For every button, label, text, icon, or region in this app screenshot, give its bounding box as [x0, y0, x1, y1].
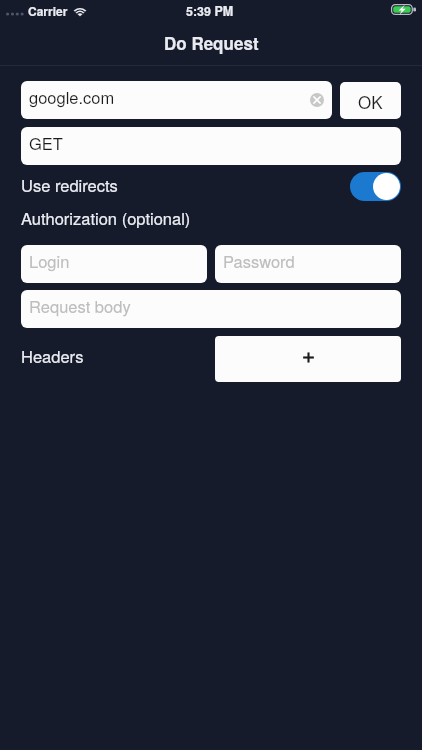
- staticText: 5:39 PM: [186, 2, 234, 20]
- button[interactable]: Clear text: [310, 93, 324, 107]
- button[interactable]: Add header: [215, 336, 401, 382]
- button[interactable]: Use redirects toggle: [350, 172, 401, 201]
- staticText: GET: [29, 131, 63, 155]
- staticText: Authorization (optional): [21, 206, 191, 230]
- staticText: Password: [223, 249, 295, 273]
- staticText: Login: [29, 249, 70, 273]
- button[interactable]: GET: [21, 127, 401, 165]
- button[interactable]: Request body: [21, 290, 401, 328]
- staticText: Use redirects: [21, 173, 118, 197]
- button[interactable]: Password: [215, 245, 401, 283]
- staticText: Request body: [29, 294, 131, 318]
- button[interactable]: Do Request: [0, 0, 422, 65]
- button[interactable]: OK: [340, 82, 401, 119]
- button[interactable]: Use redirects: [0, 170, 422, 203]
- staticText: Headers: [21, 344, 84, 368]
- button[interactable]: google.com: [21, 81, 332, 119]
- staticText: google.com: [29, 85, 115, 109]
- button[interactable]: Login: [21, 245, 207, 283]
- staticText: Carrier: [28, 2, 68, 19]
- staticText: Do Request: [164, 31, 259, 55]
- staticText: OK: [358, 89, 383, 113]
